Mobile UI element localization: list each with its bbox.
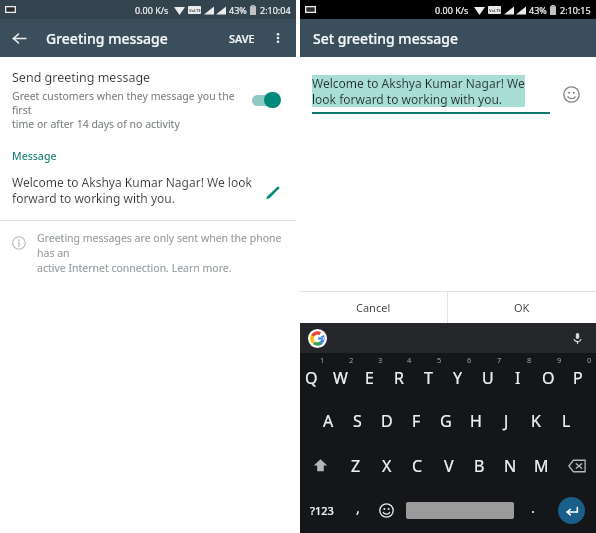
button[interactable]: Voice input — [568, 329, 586, 347]
staticText: T — [424, 367, 433, 389]
staticText: 43% — [529, 4, 547, 16]
button[interactable]: M — [526, 443, 557, 488]
button[interactable]: Shift — [300, 443, 340, 488]
staticText: B — [474, 455, 485, 477]
staticText: , — [356, 498, 360, 517]
button[interactable]: More options — [263, 23, 293, 53]
staticText: K — [531, 410, 541, 432]
button[interactable]: ?123 — [300, 488, 343, 533]
staticText: VoLTE — [189, 8, 201, 13]
button[interactable]: Cancel — [300, 292, 447, 323]
button[interactable]: Z — [340, 443, 371, 488]
button[interactable]: . — [518, 488, 547, 533]
button[interactable]: B — [464, 443, 495, 488]
staticText: Greeting messages are only sent when the… — [37, 231, 284, 275]
button[interactable]: Space — [401, 488, 518, 533]
staticText: Greeting message — [46, 29, 168, 48]
button[interactable]: N — [495, 443, 526, 488]
staticText: 3 — [378, 355, 383, 365]
button[interactable]: Google — [308, 329, 327, 348]
button[interactable]: Y — [446, 353, 476, 398]
button[interactable]: J — [491, 398, 521, 443]
button[interactable]: S — [343, 398, 372, 443]
staticText: Y — [453, 367, 463, 389]
staticText: 9 — [557, 355, 562, 365]
button[interactable]: Welcome to Akshya Kumar Nagar! We look f… — [0, 174, 296, 206]
staticText: E — [365, 367, 374, 389]
button[interactable]: , — [343, 488, 372, 533]
button[interactable]: R — [387, 353, 416, 398]
button[interactable]: C — [402, 443, 433, 488]
staticText: M — [534, 455, 549, 477]
button[interactable]: D — [372, 398, 401, 443]
staticText: 6 — [467, 355, 472, 365]
button[interactable]: H — [461, 398, 491, 443]
staticText: 2:10:04 — [260, 4, 291, 16]
button[interactable]: OK — [448, 292, 596, 323]
button[interactable]: Emoji — [372, 488, 401, 533]
button[interactable]: I — [506, 353, 536, 398]
button[interactable]: SAVE — [221, 21, 263, 56]
staticText: F — [412, 410, 421, 432]
button[interactable]: Edit — [260, 180, 284, 204]
staticText: . — [531, 498, 535, 517]
staticText: Greet customers when they message you th… — [12, 89, 244, 131]
button[interactable]: Backspace — [557, 443, 596, 488]
staticText: 2 — [349, 355, 354, 365]
button[interactable]: F — [401, 398, 431, 443]
staticText: H — [470, 410, 482, 432]
button[interactable]: Send greeting message — [0, 57, 296, 143]
staticText: 0.00 K/s — [135, 4, 169, 16]
staticText: 2:10:15 — [560, 4, 591, 16]
staticText: 1 — [320, 355, 325, 365]
button[interactable]: Back — [0, 19, 38, 57]
staticText: U — [482, 367, 494, 389]
button[interactable]: Enter — [547, 488, 596, 533]
staticText: Z — [351, 455, 361, 477]
staticText: O — [542, 367, 555, 389]
button[interactable]: V — [433, 443, 464, 488]
button[interactable]: Emoji — [560, 83, 582, 105]
staticText: Message — [12, 149, 57, 163]
staticText: VoLTE — [489, 8, 501, 13]
staticText: 0 — [587, 355, 592, 365]
staticText: Cancel — [356, 300, 391, 315]
staticText: ?123 — [310, 503, 334, 518]
button[interactable]: Q — [300, 353, 329, 398]
staticText: I — [515, 367, 521, 389]
staticText: L — [562, 410, 571, 432]
staticText: Send greeting message — [12, 69, 151, 86]
button[interactable]: E — [358, 353, 387, 398]
button[interactable]: A — [314, 398, 343, 443]
staticText: OK — [514, 300, 530, 315]
button[interactable]: G — [431, 398, 461, 443]
staticText: S — [353, 410, 362, 432]
staticText: X — [382, 455, 392, 477]
staticText: 43% — [229, 4, 247, 16]
staticText: R — [394, 367, 404, 389]
button[interactable]: L — [551, 398, 581, 443]
staticText: 7 — [497, 355, 502, 365]
staticText: G — [440, 410, 452, 432]
staticText: C — [412, 455, 423, 477]
button[interactable]: T — [416, 353, 446, 398]
staticText: N — [504, 455, 517, 477]
staticText: J — [504, 410, 509, 432]
staticText: W — [333, 367, 348, 389]
staticText: Q — [305, 367, 318, 389]
button[interactable]: W — [329, 353, 358, 398]
button[interactable]: K — [521, 398, 551, 443]
staticText: Set greeting message — [313, 29, 458, 48]
staticText: V — [444, 455, 454, 477]
button[interactable]: X — [371, 443, 402, 488]
staticText: Welcome to Akshya Kumar Nagar! We look f… — [312, 75, 525, 107]
staticText: 0.00 K/s — [435, 4, 469, 16]
staticText: SAVE — [229, 31, 255, 46]
button[interactable]: P — [566, 353, 596, 398]
staticText: 8 — [527, 355, 532, 365]
staticText: D — [381, 410, 393, 432]
button[interactable]: U — [476, 353, 506, 398]
staticText: P — [573, 367, 583, 389]
staticText: 4 — [407, 355, 412, 365]
button[interactable]: O — [536, 353, 566, 398]
